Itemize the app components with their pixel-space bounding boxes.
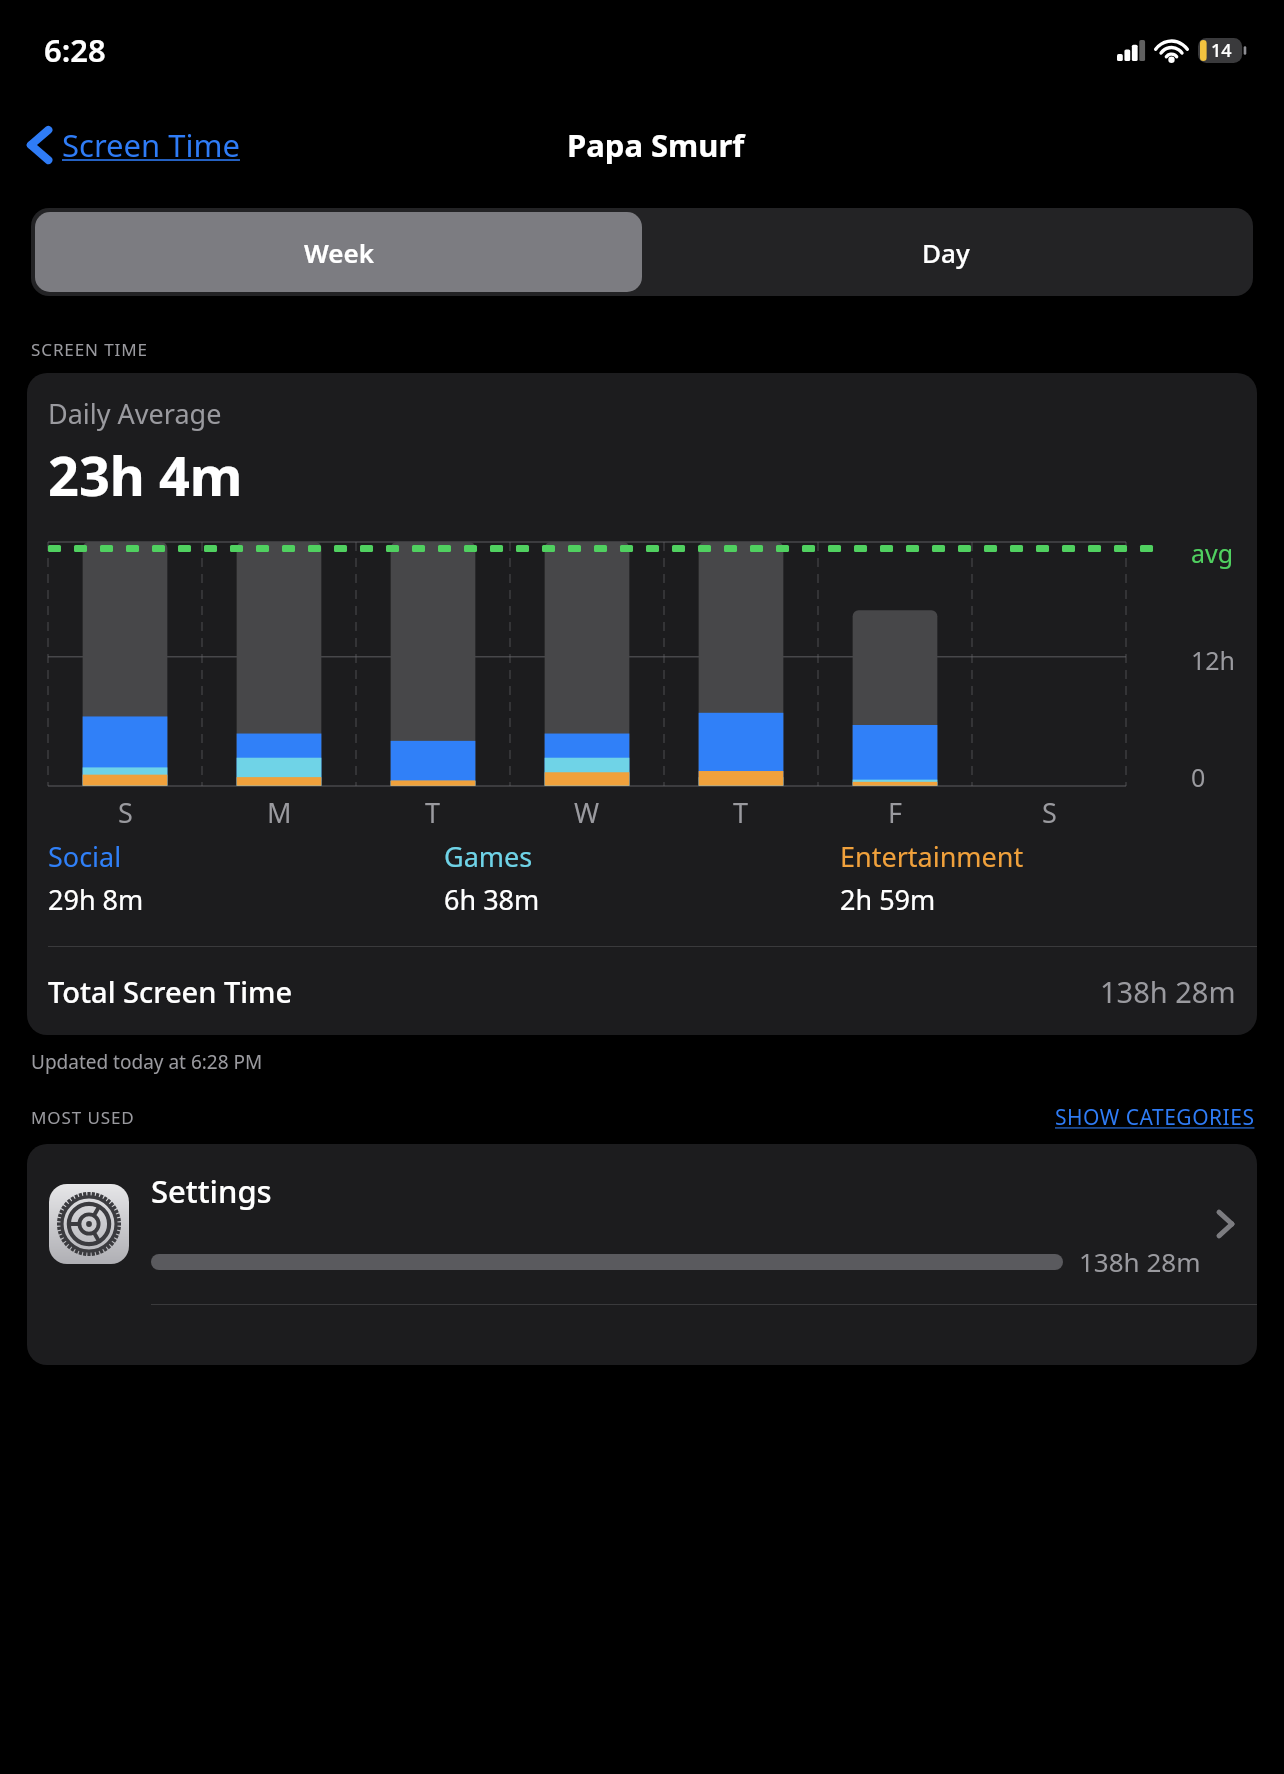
staticText: Social [48,838,122,875]
staticText: 2h 59m [840,881,936,918]
staticText: 0 [1191,760,1206,794]
button[interactable]: Day [642,212,1249,292]
staticText: avg [1191,536,1234,570]
staticText: T [425,794,441,831]
staticText: Games [444,838,533,875]
staticText: Total Screen Time [48,972,293,1011]
staticText: 6:28 [44,29,106,71]
staticText: T [733,794,749,831]
staticText: 138h 28m [1100,972,1236,1011]
staticText: Papa Smurf [567,124,745,166]
staticText: 14 [1211,38,1232,63]
staticText: Week [304,235,374,270]
staticText: SCREEN TIME [31,338,148,361]
staticText: F [888,794,903,831]
other: Open Settings details [1215,1207,1235,1241]
button[interactable]: Screen Time [22,116,246,174]
staticText: M [267,794,292,831]
staticText: S [118,794,133,831]
button[interactable]: Week [35,212,642,292]
staticText: Settings [151,1170,272,1212]
button[interactable]: Total Screen Time [27,947,1257,1035]
staticText: 12h [1191,643,1236,677]
staticText: 6h 38m [444,881,540,918]
staticText: MOST USED [31,1106,135,1129]
staticText: Entertainment [840,838,1024,875]
button[interactable]: Settings [27,1144,1257,1304]
staticText: S [1042,794,1057,831]
staticText: 29h 8m [48,881,144,918]
staticText: 138h 28m [1079,1244,1201,1279]
staticText: 23h 4m [48,438,243,512]
staticText: W [574,794,600,831]
button[interactable]: Daily Average [27,373,1257,1035]
staticText: Updated today at 6:28 PM [31,1049,263,1075]
staticText: Daily Average [48,395,222,432]
staticText: Day [922,235,970,270]
staticText: Screen Time [62,124,240,166]
staticText: SHOW CATEGORIES [1055,1103,1255,1132]
button[interactable]: SHOW CATEGORIES [1055,1103,1255,1132]
